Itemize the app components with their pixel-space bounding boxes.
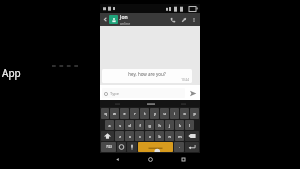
button[interactable]: Recent apps (167, 153, 200, 166)
staticText: k (179, 123, 181, 128)
staticText: h (158, 123, 161, 128)
button[interactable]: . (174, 142, 184, 152)
button[interactable]: n (165, 131, 174, 141)
button[interactable]: z (115, 131, 124, 141)
button[interactable]: g (145, 120, 154, 130)
button[interactable]: Contact avatar (109, 15, 118, 24)
button[interactable]: Type (102, 88, 185, 98)
button[interactable]: Back (100, 153, 134, 166)
staticText: u (163, 111, 166, 116)
button[interactable]: y (150, 108, 159, 119)
staticText: v (149, 134, 151, 139)
staticText: f (139, 123, 141, 128)
button[interactable]: x (125, 131, 134, 141)
button[interactable]: l (185, 120, 194, 130)
button[interactable]: e (120, 108, 129, 119)
staticText: g (148, 123, 151, 128)
staticText: w (113, 111, 116, 116)
button[interactable]: a (105, 120, 114, 130)
button[interactable]: i (170, 108, 179, 119)
staticText: App (2, 66, 21, 80)
button[interactable]: Backspace (185, 131, 199, 141)
button[interactable] (100, 100, 134, 107)
staticText: z (119, 134, 121, 139)
button[interactable]: ?123 (101, 142, 116, 152)
staticText: c (139, 134, 141, 139)
button[interactable]: s (115, 120, 124, 130)
staticText: s (119, 123, 121, 128)
button[interactable]: p (190, 108, 199, 119)
button[interactable] (134, 100, 167, 107)
button[interactable]: Emoji (117, 142, 126, 152)
staticText: Jon (120, 14, 128, 21)
staticText: q (104, 111, 107, 116)
staticText: d (128, 123, 131, 128)
staticText: ?123 (106, 145, 112, 149)
staticText: y (154, 111, 156, 116)
staticText: b (158, 134, 161, 139)
button[interactable]: f (135, 120, 144, 130)
staticText: 10:24 (105, 78, 189, 82)
staticText: t (144, 111, 146, 116)
staticText: o (183, 111, 186, 116)
staticText: a (108, 123, 111, 128)
button[interactable]: Video call (178, 14, 189, 25)
button[interactable]: o (180, 108, 189, 119)
button[interactable]: Send (187, 87, 199, 99)
staticText: l (189, 123, 190, 128)
button[interactable]: b (155, 131, 164, 141)
button[interactable]: r (130, 108, 139, 119)
staticText: j (169, 123, 170, 128)
staticText: x (129, 134, 131, 139)
staticText: Type (110, 91, 119, 96)
button[interactable]: t (140, 108, 149, 119)
staticText: e (123, 111, 126, 116)
staticText: . (179, 145, 180, 149)
button[interactable]: h (155, 120, 164, 130)
button[interactable]: Shift (101, 131, 114, 141)
staticText: online (120, 21, 131, 26)
button[interactable]: hey, how are you? (102, 69, 192, 83)
staticText: p (193, 111, 196, 116)
staticText: hey, how are you? (105, 71, 189, 77)
button[interactable]: m (175, 131, 184, 141)
button[interactable]: q (101, 108, 109, 119)
button[interactable]: w (110, 108, 119, 119)
staticText: n (168, 134, 171, 139)
button[interactable]: Enter (185, 142, 199, 152)
staticText: r (134, 111, 136, 116)
button[interactable]: u (160, 108, 169, 119)
button[interactable]: Back (102, 16, 109, 23)
staticText: m (178, 134, 182, 139)
button[interactable]: Space (138, 142, 173, 152)
button[interactable]: Jon (120, 14, 167, 26)
button[interactable]: v (145, 131, 154, 141)
button[interactable]: More options (189, 15, 199, 25)
button[interactable]: Voice input (127, 142, 137, 152)
button[interactable]: k (175, 120, 184, 130)
button[interactable]: c (135, 131, 144, 141)
button[interactable]: Home (134, 153, 167, 166)
button[interactable]: j (165, 120, 174, 130)
button[interactable]: Call (167, 14, 178, 25)
staticText: i (174, 111, 175, 116)
button[interactable]: d (125, 120, 134, 130)
button[interactable] (167, 100, 200, 107)
